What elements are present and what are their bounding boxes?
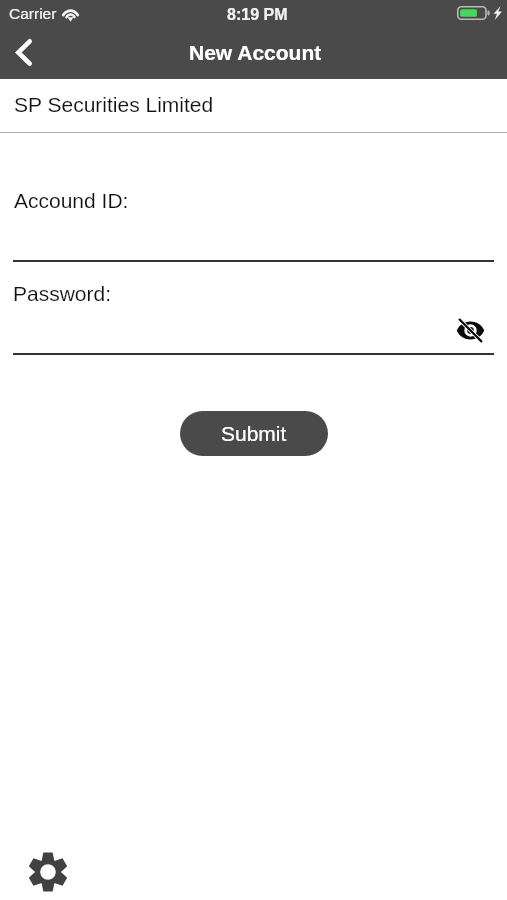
button[interactable]: Show password	[446, 306, 494, 354]
button[interactable]: Submit	[180, 411, 328, 456]
button[interactable]: Back	[2, 30, 46, 74]
button[interactable]: Settings	[25, 849, 71, 895]
staticText: SP Securities Limited	[14, 93, 214, 116]
staticText: 8:19 PM	[227, 6, 288, 24]
staticText: New Account	[189, 41, 322, 64]
button[interactable]: Password input	[13, 314, 494, 355]
staticText: Carrier	[9, 5, 57, 22]
button[interactable]: Account ID input	[13, 221, 494, 262]
staticText: Password:	[13, 282, 112, 305]
staticText: Accound ID:	[14, 189, 129, 212]
staticText: Submit	[221, 422, 287, 445]
